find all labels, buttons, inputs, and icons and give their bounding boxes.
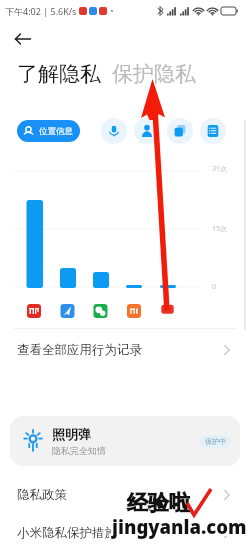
button[interactable]: 了解隐私: [17, 61, 101, 87]
staticText: 经验啦: [128, 491, 191, 517]
staticText: 经验啦: [129, 492, 192, 518]
staticText: 照明弹: [52, 426, 91, 442]
staticText: 经验啦: [129, 488, 192, 514]
staticText: jingyanla.com: [114, 515, 249, 540]
button[interactable]: Contacts: [134, 118, 160, 144]
staticText: 查看全部应用行为记录: [17, 342, 142, 358]
staticText: jingyanla.com: [113, 512, 248, 537]
staticText: 经验啦: [129, 489, 192, 515]
button[interactable]: Files: [167, 118, 193, 144]
button[interactable]: 位置信息: [17, 120, 80, 142]
staticText: 经验啦: [126, 489, 189, 515]
staticText: 经验啦: [126, 488, 189, 514]
staticText: jingyanla.com: [113, 516, 248, 541]
staticText: 小米隐私保护措施: [17, 525, 117, 541]
staticText: 经验啦: [126, 491, 189, 517]
staticText: 经验啦: [128, 489, 191, 515]
staticText: 下午4:02 | 5.6K/s: [5, 5, 77, 17]
staticText: jingyanla.com: [114, 512, 249, 537]
staticText: jingyanla.com: [111, 515, 246, 540]
button[interactable]: Back: [10, 27, 36, 51]
staticText: jingyanla.com: [114, 516, 249, 541]
staticText: jingyanla.com: [111, 512, 246, 537]
staticText: 经验啦: [125, 488, 188, 514]
staticText: 经验啦: [127, 492, 190, 518]
staticText: jingyanla.com: [111, 513, 246, 538]
staticText: jingyanla.com: [110, 512, 245, 537]
staticText: jingyanla.com: [112, 512, 247, 537]
staticText: 隐私完全知情: [52, 445, 106, 456]
button[interactable]: 照明弹: [10, 416, 240, 466]
staticText: jingyanla.com: [111, 516, 246, 541]
staticText: 经验啦: [125, 490, 188, 516]
staticText: 经验啦: [128, 492, 191, 518]
staticText: 经验啦: [129, 490, 192, 516]
staticText: jingyanla.com: [113, 515, 248, 540]
staticText: 15次: [212, 224, 228, 234]
staticText: 了解隐私: [17, 61, 101, 87]
staticText: jingyanla.com: [110, 515, 245, 540]
staticText: 经验啦: [127, 490, 190, 516]
staticText: jingyanla.com: [110, 516, 245, 541]
button[interactable]: 保护隐私: [112, 61, 196, 87]
staticText: jingyanla.com: [113, 513, 248, 538]
staticText: 保护中: [205, 437, 226, 446]
button[interactable]: 小米隐私保护措施: [0, 517, 250, 549]
button[interactable]: 查看全部应用行为记录: [0, 329, 250, 371]
staticText: jingyanla.com: [112, 516, 247, 541]
staticText: 经验啦: [127, 488, 190, 514]
button[interactable]: Calendar: [200, 118, 226, 144]
staticText: jingyanla.com: [112, 514, 247, 539]
staticText: 位置信息: [39, 126, 73, 137]
staticText: 31次: [212, 164, 228, 174]
staticText: 经验啦: [128, 488, 191, 514]
button[interactable]: 隐私政策: [0, 479, 250, 511]
staticText: 经验啦: [125, 489, 188, 515]
staticText: 经验啦: [126, 492, 189, 518]
staticText: jingyanla.com: [114, 513, 249, 538]
staticText: jingyanla.com: [110, 513, 245, 538]
staticText: 隐私政策: [17, 487, 67, 503]
staticText: jingyanla.com: [110, 514, 245, 539]
staticText: 经验啦: [125, 492, 188, 518]
staticText: 经验啦: [125, 491, 188, 517]
staticText: 保护隐私: [112, 61, 196, 87]
staticText: 0: [212, 282, 217, 292]
staticText: jingyanla.com: [114, 514, 249, 539]
staticText: 经验啦: [129, 491, 192, 517]
button[interactable]: Microphone: [101, 118, 127, 144]
